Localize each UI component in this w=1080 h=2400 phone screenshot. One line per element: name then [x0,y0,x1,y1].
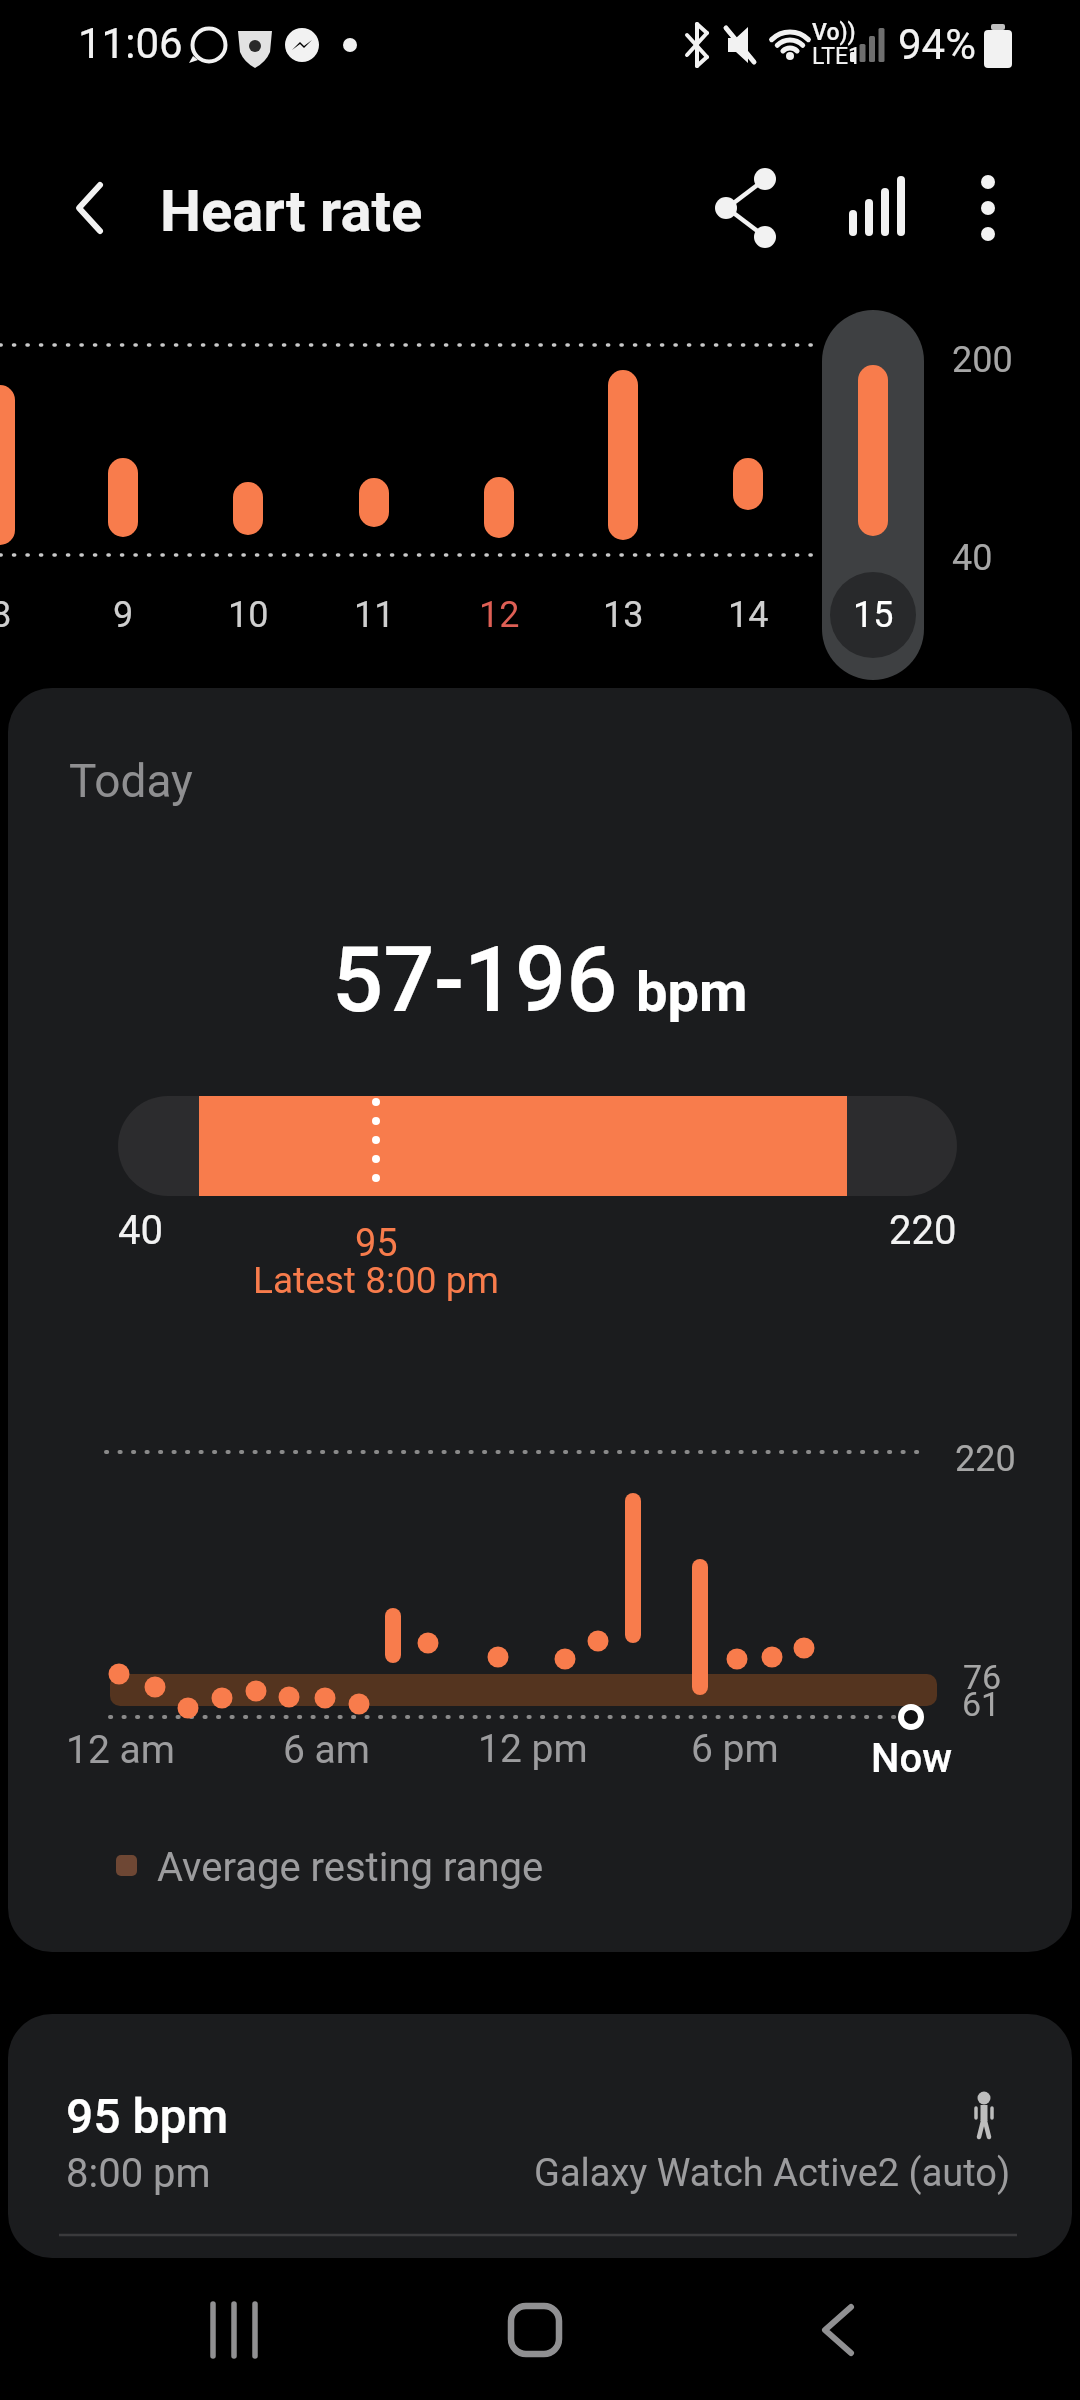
button[interactable] [8,2014,1072,2258]
staticText: 12 am [66,1727,175,1773]
button[interactable] [8,688,1072,1952]
staticText: 61 [962,1684,1001,1724]
staticText: 220 [955,1438,1016,1480]
staticText: Latest 8:00 pm [253,1259,499,1302]
staticText: Heart rate [160,177,423,245]
staticText: Average resting range [157,1844,544,1891]
staticText: bpm [636,959,748,1025]
staticText: 14 [728,594,769,636]
staticText: 8 [0,594,12,636]
staticText: 76 [963,1657,1002,1697]
staticText: 9 [113,594,134,636]
button[interactable] [822,310,924,680]
staticText: 11:06 [78,19,183,68]
staticText: Today [69,754,193,808]
staticText: 13 [603,594,644,636]
staticText: LTE1 [812,43,862,70]
button[interactable] [40,160,140,260]
button[interactable] [938,158,1038,258]
staticText: 57-196 [332,928,618,1033]
staticText: Now [871,1735,952,1782]
staticText: 11 [354,594,395,636]
staticText: 15 [853,594,894,636]
staticText: 8:00 pm [66,2150,211,2197]
button[interactable] [815,158,915,258]
staticText: 40 [952,537,993,579]
button[interactable] [485,2280,585,2380]
button[interactable] [210,2280,310,2380]
staticText: 12 [479,594,520,636]
staticText: Vo)) [812,19,856,46]
staticText: 95 [355,1221,398,1266]
staticText: 220 [889,1207,957,1254]
staticText: 6 am [283,1727,371,1773]
staticText: 200 [952,339,1013,381]
button[interactable] [695,158,795,258]
staticText: 94% [898,20,976,69]
staticText: 95 bpm [66,2088,229,2144]
staticText: 10 [228,594,269,636]
staticText: 12 pm [478,1726,588,1772]
staticText: Galaxy Watch Active2 (auto) [534,2151,1011,2196]
staticText: 6 pm [691,1726,779,1772]
button[interactable] [788,2280,888,2380]
staticText: 40 [118,1207,163,1254]
